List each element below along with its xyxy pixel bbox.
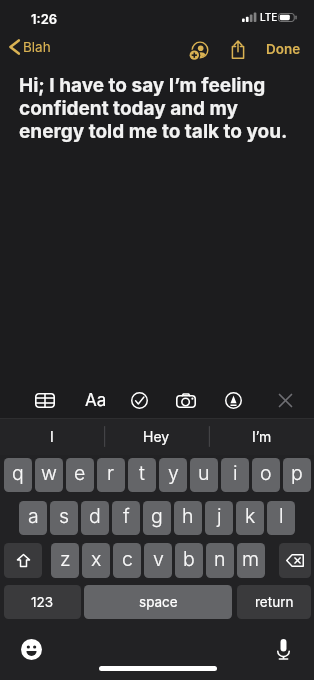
staticText: 1:26 <box>31 11 58 27</box>
button[interactable]: Done <box>258 36 309 62</box>
button[interactable]: n <box>206 543 234 578</box>
button[interactable]: 123 <box>4 585 81 619</box>
button[interactable]: Camera <box>169 383 203 417</box>
staticText: l <box>279 504 284 528</box>
button[interactable]: t <box>128 458 156 492</box>
staticText: k <box>245 504 256 528</box>
staticText: e <box>74 461 86 485</box>
staticText: I’m <box>252 428 272 445</box>
staticText: return <box>255 594 294 610</box>
button[interactable]: Blah <box>4 35 57 59</box>
staticText: x <box>91 547 102 571</box>
button[interactable]: p <box>283 458 311 492</box>
button[interactable]: Markup <box>216 383 250 417</box>
button[interactable]: Backspace <box>279 543 311 578</box>
button[interactable]: a <box>19 501 47 535</box>
staticText: Hey <box>143 428 170 445</box>
button[interactable]: Hey <box>104 418 209 455</box>
staticText: r <box>107 461 115 485</box>
button[interactable]: I <box>0 418 104 455</box>
button[interactable]: x <box>82 543 110 578</box>
button[interactable]: i <box>221 458 249 492</box>
staticText: space <box>139 594 178 610</box>
button[interactable]: w <box>35 458 63 492</box>
button[interactable]: b <box>175 543 203 578</box>
button[interactable]: e <box>66 458 94 492</box>
button[interactable]: Dictation <box>268 634 299 665</box>
button[interactable]: c <box>113 543 141 578</box>
button[interactable]: Shift <box>4 543 42 578</box>
staticText: s <box>59 504 70 528</box>
staticText: 123 <box>31 594 54 610</box>
staticText: Done <box>266 41 301 57</box>
button[interactable]: v <box>144 543 172 578</box>
button[interactable]: Emoji <box>16 634 47 665</box>
button[interactable]: d <box>81 501 109 535</box>
staticText: b <box>183 547 195 571</box>
staticText: y <box>168 461 179 485</box>
staticText: o <box>260 461 272 485</box>
button[interactable]: g <box>143 501 171 535</box>
button[interactable]: f <box>112 501 140 535</box>
staticText: Aa <box>85 390 107 411</box>
staticText: w <box>41 461 57 485</box>
button[interactable]: return <box>237 585 311 619</box>
button[interactable]: z <box>51 543 79 578</box>
button[interactable]: space <box>84 585 232 619</box>
button[interactable]: u <box>190 458 218 492</box>
staticText: I <box>50 428 54 445</box>
staticText: i <box>233 461 238 485</box>
button[interactable]: k <box>236 501 264 535</box>
button[interactable]: I’m <box>209 418 314 455</box>
staticText: LTE <box>260 11 278 23</box>
staticText: q <box>12 461 24 485</box>
staticText: t <box>139 461 145 485</box>
button[interactable]: h <box>174 501 202 535</box>
button[interactable]: s <box>50 501 78 535</box>
staticText: c <box>122 547 133 571</box>
staticText: g <box>151 504 163 528</box>
button[interactable]: m <box>237 543 265 578</box>
button[interactable]: Aa <box>79 383 113 417</box>
button[interactable]: y <box>159 458 187 492</box>
button[interactable]: r <box>97 458 125 492</box>
staticText: Hi; I have to say I’m feeling confident … <box>19 74 295 143</box>
button[interactable]: Checklist <box>122 383 156 417</box>
button[interactable]: Close keyboard <box>268 383 302 417</box>
button[interactable]: Table <box>28 383 62 417</box>
staticText: m <box>242 547 260 571</box>
button[interactable]: Add people <box>184 34 216 66</box>
staticText: Blah <box>23 39 51 55</box>
staticText: a <box>28 504 39 528</box>
staticText: n <box>214 547 226 571</box>
staticText: f <box>123 504 130 528</box>
staticText: h <box>182 504 194 528</box>
staticText: d <box>89 504 101 528</box>
staticText: v <box>153 547 164 571</box>
staticText: z <box>60 547 71 571</box>
staticText: p <box>291 461 303 485</box>
button[interactable]: j <box>205 501 233 535</box>
staticText: u <box>198 461 210 485</box>
button[interactable]: Share <box>222 33 254 65</box>
button[interactable]: q <box>4 458 32 492</box>
button[interactable]: l <box>267 501 295 535</box>
button[interactable]: o <box>252 458 280 492</box>
staticText: j <box>217 504 222 528</box>
